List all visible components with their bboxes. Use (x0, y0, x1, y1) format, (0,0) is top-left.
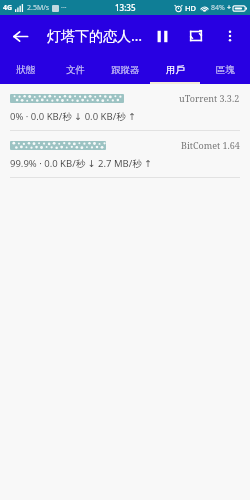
staticText: 區塊 (216, 64, 235, 76)
staticText: uTorrent 3.3.2 (179, 92, 240, 104)
staticText: 文件 (66, 64, 85, 76)
staticText: 99.9% · 0.0 KB/秒 ↓ 2.7 MB/秒 ↑ (10, 157, 153, 170)
button[interactable]: 狀態 (0, 56, 50, 84)
button[interactable]: 文件 (50, 56, 100, 84)
staticText: 2.5M/s (27, 3, 50, 13)
staticText: ··· (61, 3, 67, 13)
staticText: 84% (211, 3, 225, 13)
staticText: 狀態 (16, 64, 35, 76)
button[interactable]: 用戶 (150, 56, 200, 84)
button[interactable]: Sequential download (179, 19, 213, 53)
button[interactable]: Back (0, 16, 40, 56)
staticText: 13:35 (115, 2, 136, 13)
button[interactable]: BitComet 1.64 (0, 131, 250, 177)
staticText: 0% · 0.0 KB/秒 ↓ 0.0 KB/秒 ↑ (10, 110, 137, 123)
button[interactable]: 區塊 (200, 56, 250, 84)
button[interactable]: uTorrent 3.3.2 (0, 84, 250, 130)
staticText: + (227, 3, 232, 13)
button[interactable]: 跟蹤器 (100, 56, 150, 84)
staticText: 4G (3, 3, 13, 13)
staticText: BitComet 1.64 (181, 139, 240, 151)
button[interactable]: Pause (145, 19, 179, 53)
staticText: 跟蹤器 (111, 64, 140, 76)
staticText: 用戶 (166, 64, 185, 76)
staticText: HD (185, 3, 197, 13)
button[interactable]: More options (213, 19, 247, 53)
staticText: 灯塔下的恋人… (47, 26, 143, 45)
